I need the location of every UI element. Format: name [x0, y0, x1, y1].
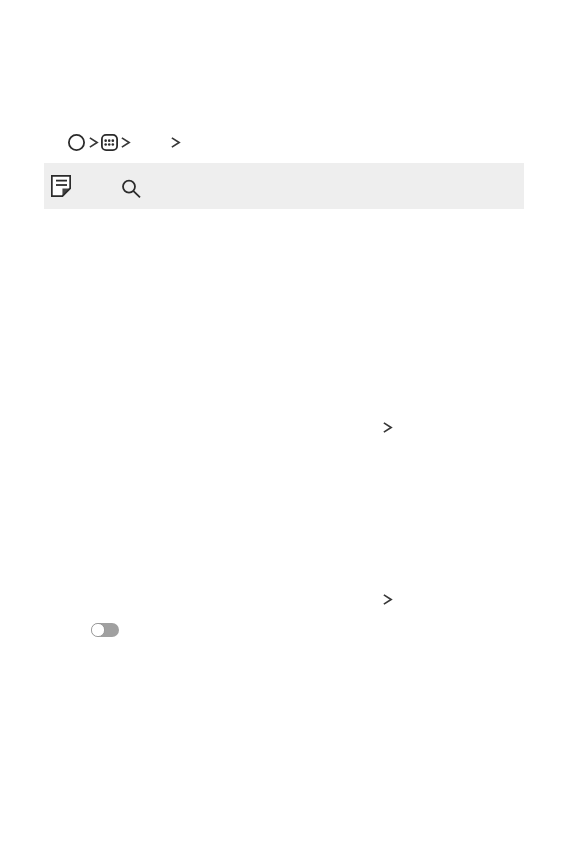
button[interactable]: Next step: [378, 590, 396, 608]
button[interactable]: Notes: [51, 175, 71, 197]
button[interactable]: Switch, off: [91, 623, 119, 637]
button[interactable]: Search: [121, 178, 142, 199]
button[interactable]: Apps: [99, 132, 119, 152]
button[interactable]: Next step: [378, 418, 396, 436]
button[interactable]: Home: [66, 132, 86, 152]
button[interactable]: [44, 163, 524, 209]
